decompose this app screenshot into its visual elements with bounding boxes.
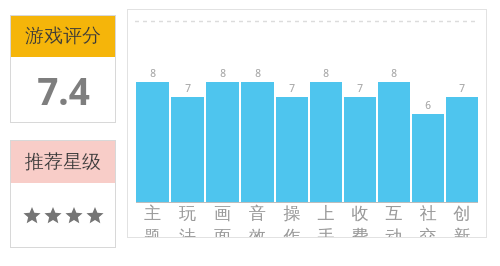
button[interactable]: 推荐星级 (10, 140, 116, 248)
staticText: 7 (185, 81, 191, 95)
staticText: 8 (391, 66, 397, 80)
staticText: 互动 (378, 203, 410, 238)
staticText: 操作 (276, 203, 308, 238)
button[interactable]: 7 (171, 9, 204, 203)
button[interactable]: 6 (412, 9, 444, 203)
staticText: 8 (150, 66, 156, 80)
button[interactable]: 收费 (344, 203, 376, 238)
staticText: 推荐星级 (25, 150, 101, 174)
staticText: 7 (357, 81, 363, 95)
staticText: 玩法 (171, 203, 204, 238)
staticText: 画面 (206, 203, 239, 238)
button[interactable]: 画面 (206, 203, 239, 238)
button[interactable]: 8 (136, 9, 169, 203)
staticText: 8 (255, 66, 261, 80)
staticText: 8 (323, 66, 329, 80)
button[interactable]: 7 (276, 9, 308, 203)
button[interactable]: 8 (241, 9, 274, 203)
button[interactable]: 音效 (241, 203, 274, 238)
staticText: 上手 (310, 203, 342, 238)
button[interactable]: 上手 (310, 203, 342, 238)
button[interactable]: 游戏评分 (10, 15, 116, 123)
staticText: 6 (425, 98, 431, 112)
button[interactable]: 玩法 (171, 203, 204, 238)
staticText: 音效 (241, 203, 274, 238)
staticText: 7.4 (37, 65, 90, 115)
staticText: 7 (289, 81, 295, 95)
button[interactable]: 7 (344, 9, 376, 203)
button[interactable]: 操作 (276, 203, 308, 238)
button[interactable]: 社交 (412, 203, 444, 238)
other: 4 out of 5 stars (23, 207, 104, 225)
button[interactable]: 创新 (446, 203, 478, 238)
staticText: 7 (459, 81, 465, 95)
staticText: 主题 (136, 203, 169, 238)
staticText: 社交 (412, 203, 444, 238)
button[interactable]: 8 (378, 9, 410, 203)
button[interactable]: 8 (206, 9, 239, 203)
button[interactable]: 8 (310, 9, 342, 203)
staticText: 创新 (446, 203, 478, 238)
button[interactable]: 互动 (378, 203, 410, 238)
staticText: 游戏评分 (25, 24, 101, 48)
button[interactable]: 主题 (136, 203, 169, 238)
staticText: 收费 (344, 203, 376, 238)
staticText: 8 (220, 66, 226, 80)
button[interactable]: 7 (446, 9, 478, 203)
